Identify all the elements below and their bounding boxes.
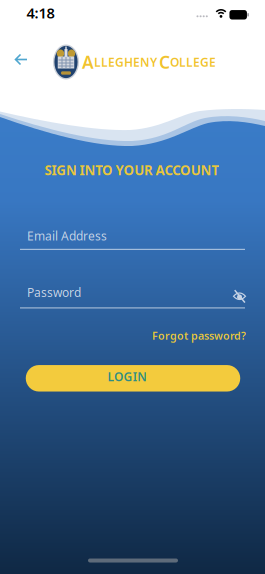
staticText: Forgot password? bbox=[152, 328, 246, 343]
button[interactable]: Email Address bbox=[20, 222, 245, 250]
button[interactable]: Forgot password? bbox=[152, 325, 246, 346]
staticText: A bbox=[82, 50, 94, 73]
button[interactable]: LOGIN bbox=[26, 365, 240, 392]
button[interactable]: Back bbox=[8, 48, 33, 70]
staticText: OLLEGE bbox=[170, 54, 216, 70]
button[interactable]: Password bbox=[20, 281, 245, 308]
button[interactable]: Show password bbox=[228, 286, 250, 307]
staticText: Password bbox=[27, 284, 81, 300]
staticText: SIGN INTO YOUR ACCOUNT bbox=[45, 161, 219, 179]
staticText: C bbox=[159, 50, 170, 73]
staticText: Email Address bbox=[27, 228, 107, 244]
staticText: LOGIN bbox=[108, 368, 147, 384]
staticText: 4:18 bbox=[26, 3, 54, 22]
staticText: LLEGHENY bbox=[94, 54, 157, 70]
